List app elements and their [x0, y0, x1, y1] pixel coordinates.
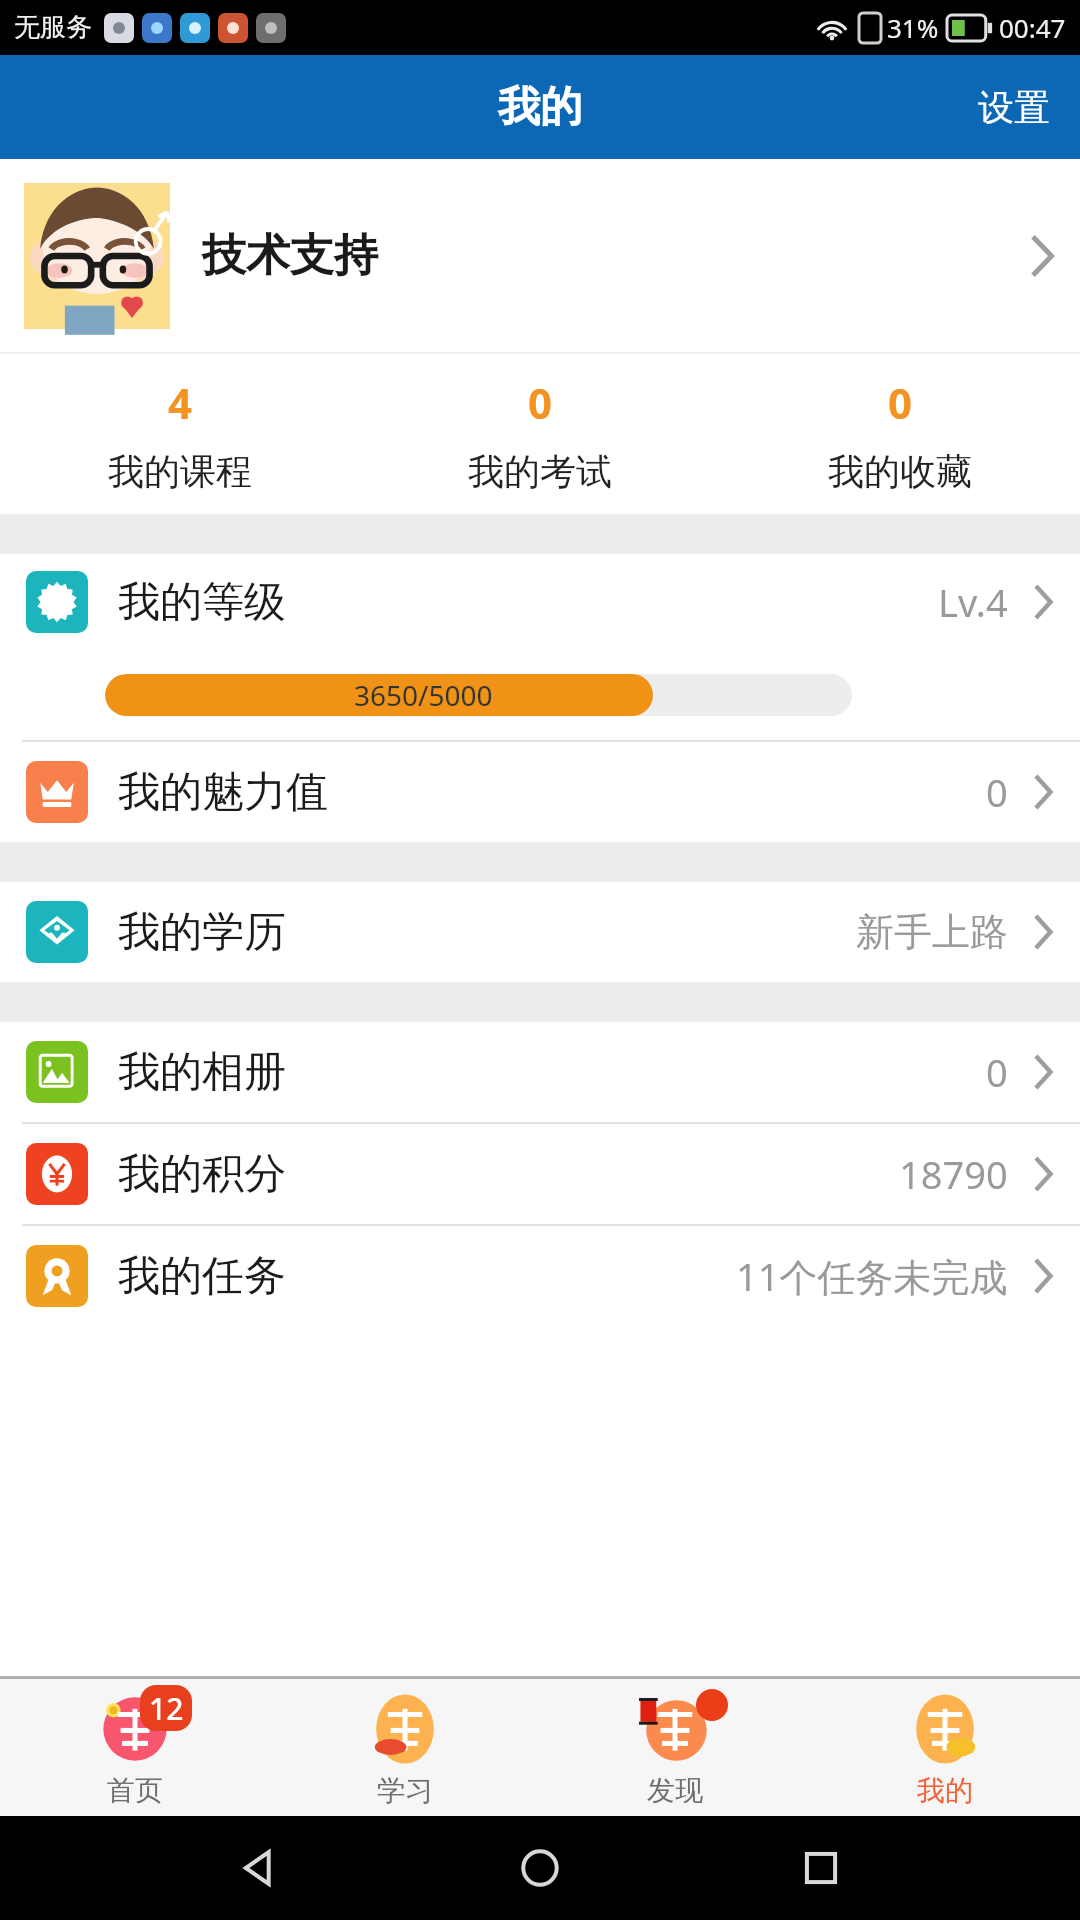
staticText: 我的 [498, 81, 582, 134]
button[interactable]: 设置 [948, 55, 1080, 159]
staticText: 无服务 [14, 11, 92, 44]
staticText: 00:47 [999, 10, 1066, 45]
staticText: 我的学历 [118, 906, 286, 959]
staticText: 我的等级 [118, 576, 286, 629]
button[interactable]: 我的相册 [0, 1022, 1080, 1122]
other: Home [518, 1846, 562, 1890]
staticText: 首页 [107, 1773, 163, 1808]
button[interactable]: 4 [0, 354, 360, 514]
staticText: 发现 [647, 1773, 703, 1808]
staticText: 0 [986, 766, 1008, 818]
staticText: 设置 [978, 85, 1050, 130]
staticText: 技术支持 [202, 228, 378, 283]
button[interactable]: 我的积分 [0, 1124, 1080, 1224]
staticText: 我的考试 [468, 449, 612, 494]
staticText: 我的课程 [108, 449, 252, 494]
button[interactable]: 0 [720, 354, 1080, 514]
button[interactable]: 发现 [540, 1679, 810, 1816]
staticText: 0 [888, 374, 913, 431]
staticText: 31% [887, 10, 939, 45]
staticText: 我的收藏 [828, 449, 972, 494]
other: Recents [799, 1846, 843, 1890]
staticText: 我的任务 [118, 1250, 286, 1303]
staticText: 我的魅力值 [118, 766, 328, 819]
staticText: 我的 [917, 1773, 973, 1808]
staticText: 学习 [377, 1773, 433, 1808]
button[interactable]: 我的 [810, 1679, 1080, 1816]
staticText: 11个任务未完成 [736, 1250, 1008, 1302]
button[interactable]: 12 [0, 1679, 270, 1816]
staticText: 4 [168, 374, 193, 431]
button[interactable]: 我的学历 [0, 882, 1080, 982]
button[interactable]: 学习 [270, 1679, 540, 1816]
staticText: 0 [528, 374, 553, 431]
button[interactable]: 0 [360, 354, 720, 514]
button[interactable]: 技术支持 [0, 159, 1080, 352]
staticText: 0 [986, 1046, 1008, 1098]
staticText: 我的相册 [118, 1046, 286, 1099]
staticText: 12 [149, 1688, 184, 1729]
staticText: 新手上路 [856, 908, 1008, 956]
button[interactable]: 我的等级 [0, 554, 1080, 650]
other: Back [237, 1846, 281, 1890]
staticText: 3650/5000 [354, 676, 493, 714]
button[interactable]: 我的魅力值 [0, 742, 1080, 842]
staticText: Lv.4 [938, 576, 1008, 628]
button[interactable]: 我的任务 [0, 1226, 1080, 1326]
staticText: 我的积分 [118, 1148, 286, 1201]
staticText: 18790 [899, 1148, 1008, 1200]
